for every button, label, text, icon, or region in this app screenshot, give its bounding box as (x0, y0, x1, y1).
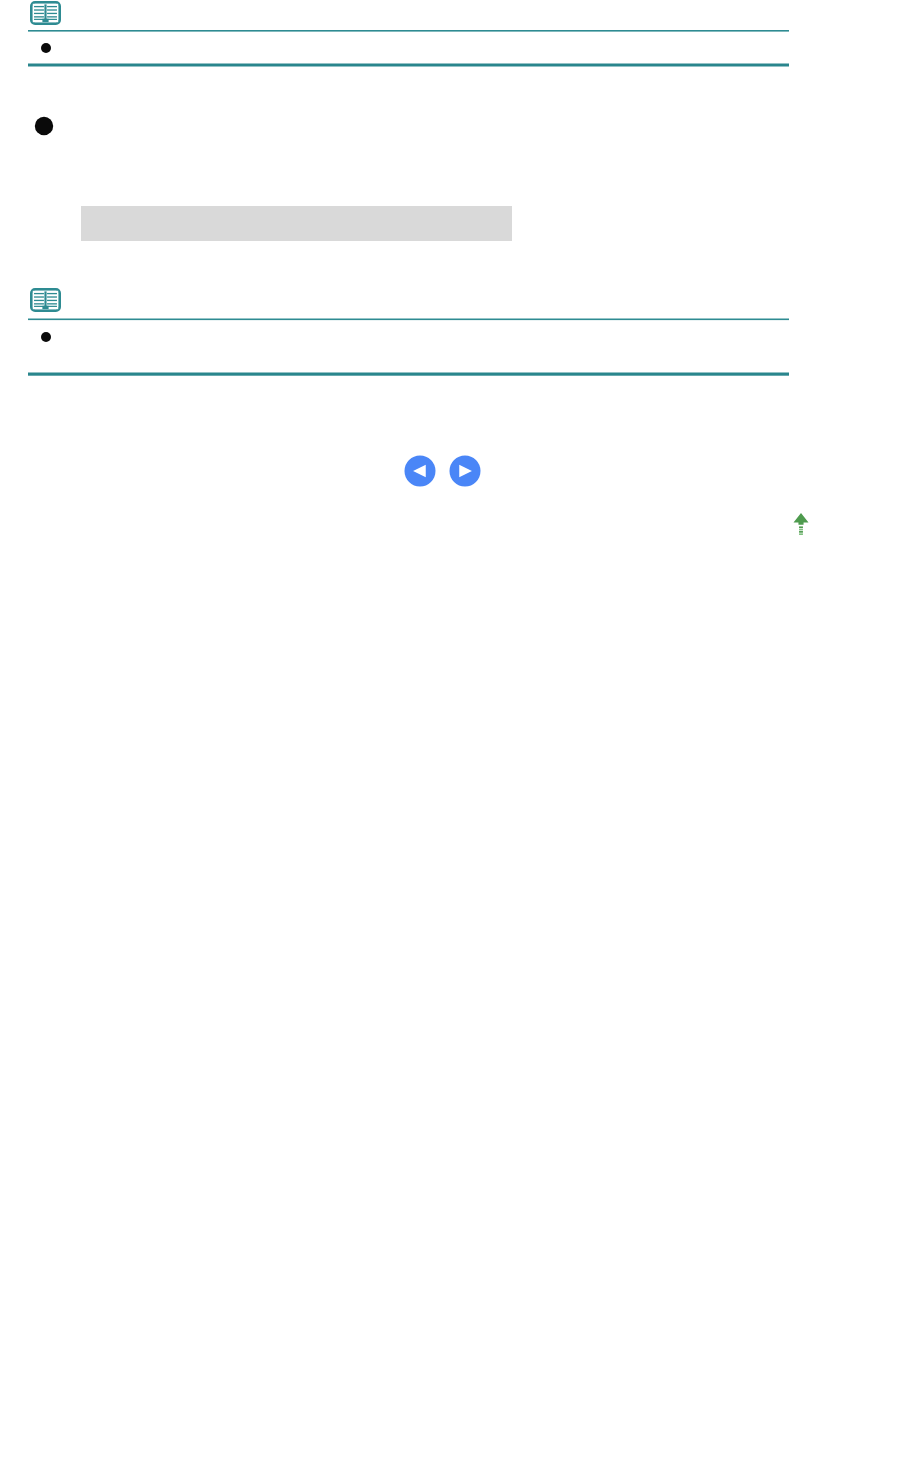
button[interactable]: Next page (450, 456, 481, 487)
button[interactable]: Note (28, 287, 64, 313)
button[interactable]: Note (28, 0, 64, 26)
button[interactable]: Back to top (790, 508, 814, 540)
button[interactable]: Previous page (405, 456, 436, 487)
